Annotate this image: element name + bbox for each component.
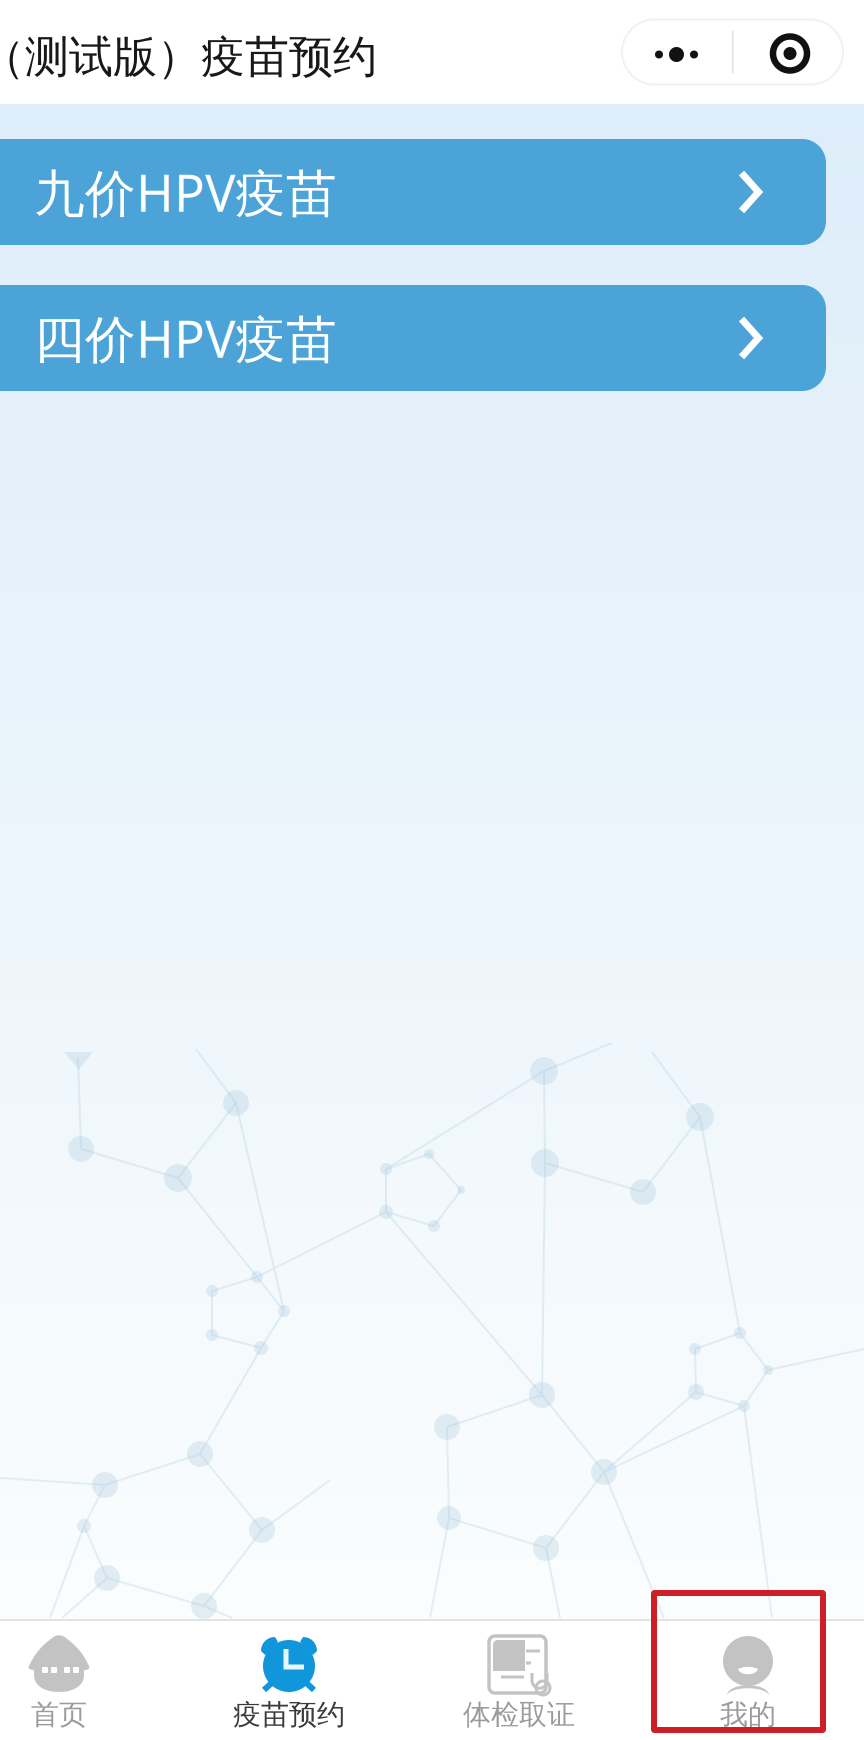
staticText: 我的	[720, 1697, 776, 1732]
button[interactable]: 首页	[0, 1619, 145, 1740]
button[interactable]: More options	[622, 19, 843, 84]
button[interactable]: 疫苗预约	[174, 1619, 404, 1740]
staticText: 首页	[31, 1697, 87, 1732]
button[interactable]: 九价HPV疫苗	[0, 139, 864, 245]
staticText: 疫苗预约	[233, 1697, 345, 1732]
staticText: （测试版）疫苗预约	[0, 29, 377, 85]
button[interactable]: 我的	[633, 1619, 863, 1740]
staticText: 九价HPV疫苗	[34, 157, 337, 226]
staticText: 四价HPV疫苗	[34, 303, 337, 372]
button[interactable]: 四价HPV疫苗	[0, 285, 864, 391]
button[interactable]: 体检取证	[404, 1619, 634, 1740]
staticText: 体检取证	[463, 1697, 575, 1732]
